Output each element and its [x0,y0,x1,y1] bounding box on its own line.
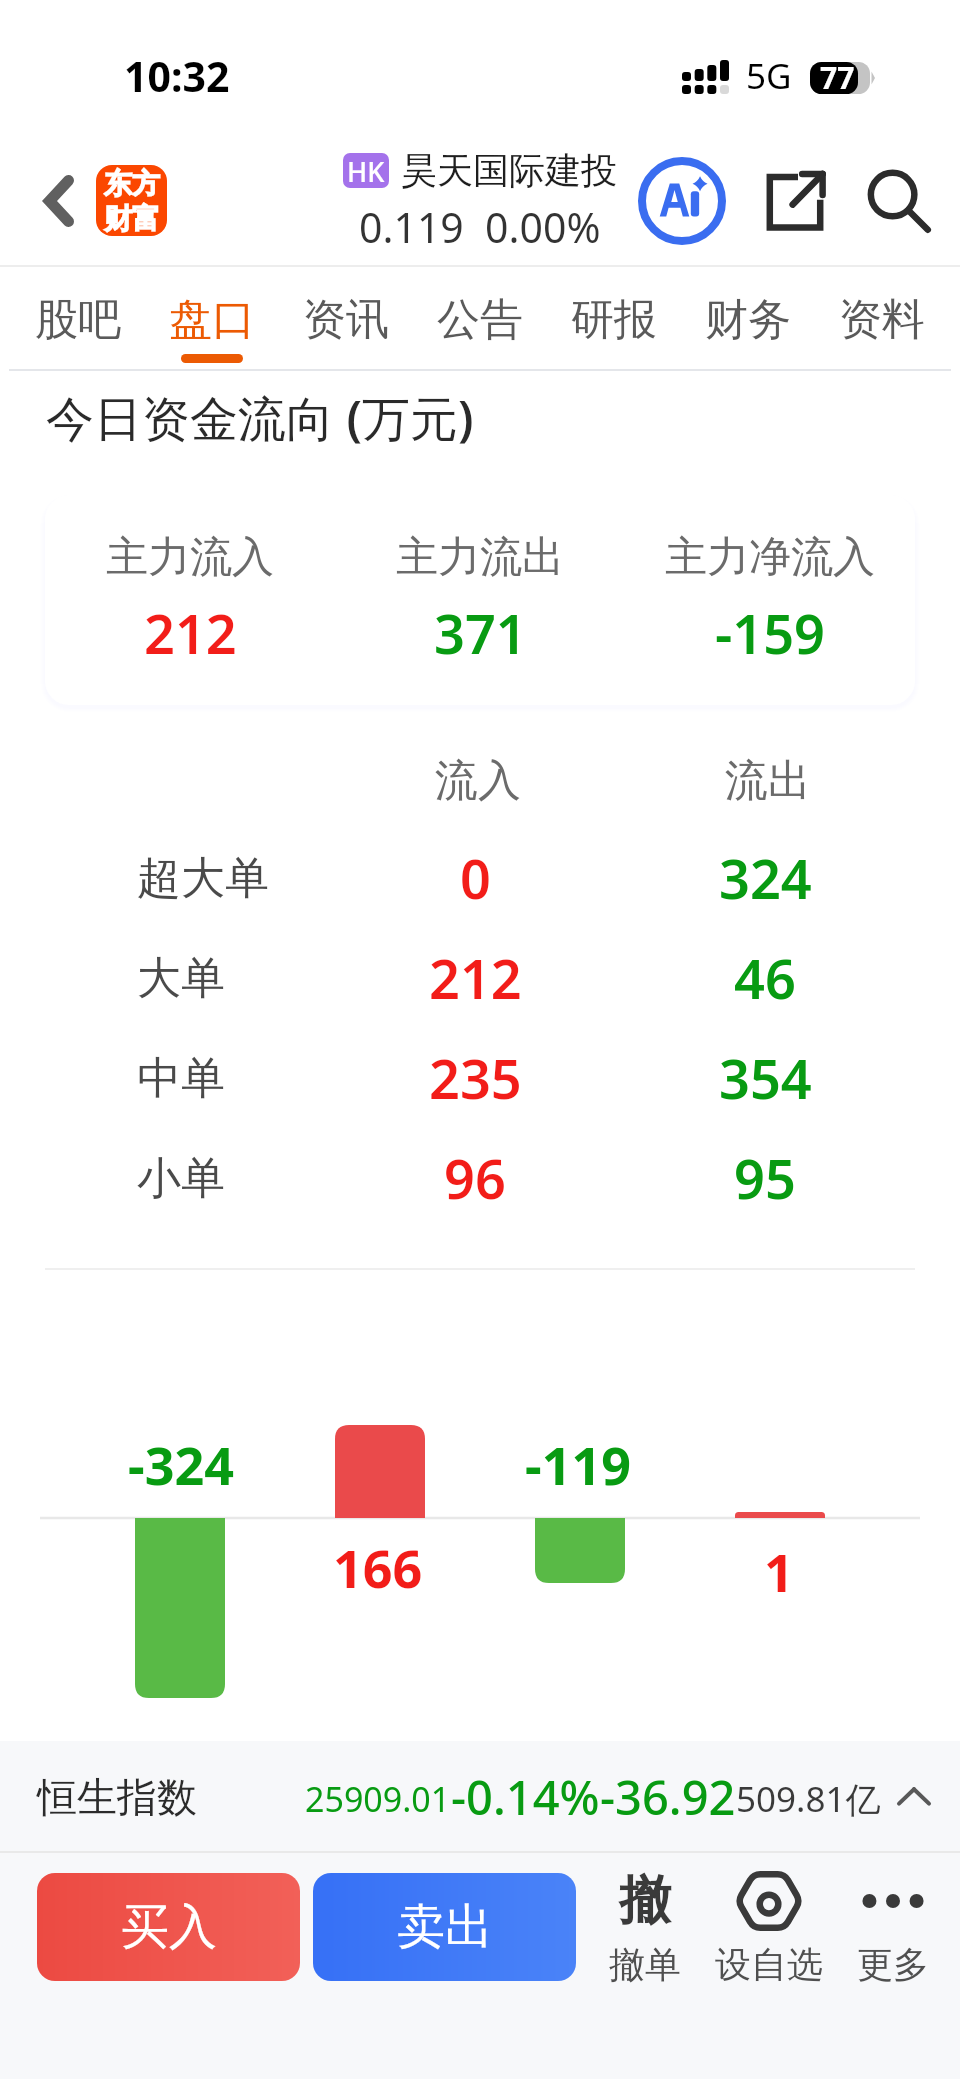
button[interactable]: 财务 [686,267,810,371]
button[interactable]: 盘口 [150,267,274,371]
staticText: 354 [719,1041,812,1115]
staticText: 流出 [725,754,811,808]
staticText: -324 [128,1429,234,1500]
staticText: 大单 [137,951,225,1006]
staticText: 46 [734,941,796,1015]
staticText: 主力流出 [396,531,564,584]
staticText: 10:32 [124,48,230,104]
staticText: 主力流入 [106,531,274,584]
staticText: 小单 [137,1151,225,1206]
staticText: 更多 [857,1942,929,1987]
button[interactable]: 设自选 [707,1868,831,1987]
button[interactable]: Share [749,155,841,247]
staticText: 恒生指数 [37,1772,197,1822]
staticText: 股吧 [35,293,121,347]
staticText: 0.119 0.00% [359,199,601,255]
staticText: 卖出 [397,1897,493,1957]
staticText: 509.81亿 [736,1775,881,1823]
staticText: 5G [746,52,792,100]
staticText: 96 [444,1141,506,1215]
staticText: 主力净流入 [665,531,875,584]
button[interactable]: 公告 [418,267,542,371]
button[interactable]: 超大单 [0,828,960,928]
staticText: 买入 [121,1897,217,1957]
staticText: 设自选 [715,1942,823,1987]
staticText: -159 [715,596,825,670]
staticText: 今日资金流向 (万元) [46,385,474,451]
button[interactable]: 股吧 [16,267,140,371]
staticText: 77 [820,57,855,98]
staticText: 中单 [137,1051,225,1106]
button[interactable]: AI assistant [636,155,728,247]
button[interactable]: 撤 [583,1868,707,1987]
staticText: 资讯 [303,293,389,347]
staticText: 0 [460,841,491,915]
staticText: -0.14% [451,1765,600,1829]
button[interactable]: Back [0,134,96,267]
staticText: 212 [429,941,522,1015]
staticText: 昊天国际建投 [401,148,617,193]
staticText: -119 [525,1429,631,1500]
staticText: 25909.01 [305,1776,451,1822]
button[interactable]: 小单 [0,1128,960,1228]
staticText: 95 [734,1141,796,1215]
staticText: 资料 [839,293,925,347]
staticText: 212 [144,596,237,670]
staticText: 超大单 [137,851,269,906]
staticText: 财务 [705,293,791,347]
button[interactable]: 研报 [552,267,676,371]
button[interactable]: 资讯 [284,267,408,371]
staticText: 1 [764,1536,794,1607]
staticText: 371 [434,596,527,670]
button[interactable]: 中单 [0,1028,960,1128]
staticText: 撤 [619,1868,671,1934]
button[interactable]: 大单 [0,928,960,1028]
staticText: 财富 [104,201,160,236]
button[interactable]: East Money home [96,165,167,236]
staticText: 235 [429,1041,522,1115]
staticText: 东方 [104,166,160,201]
staticText: 流入 [435,754,521,808]
button[interactable]: 买入 [37,1873,300,1981]
staticText: 盘口 [169,293,255,347]
staticText: 撤单 [609,1942,681,1987]
staticText: HK [347,153,385,188]
staticText: 166 [333,1532,423,1603]
staticText: -36.92 [600,1765,736,1829]
staticText: 公告 [437,293,523,347]
staticText: 研报 [571,293,657,347]
button[interactable]: Search [853,155,945,247]
button[interactable]: 资料 [820,267,944,371]
button[interactable]: 更多 [831,1868,955,1987]
staticText: 324 [719,841,812,915]
button[interactable]: Expand [888,1771,940,1823]
button[interactable]: 卖出 [313,1873,576,1981]
